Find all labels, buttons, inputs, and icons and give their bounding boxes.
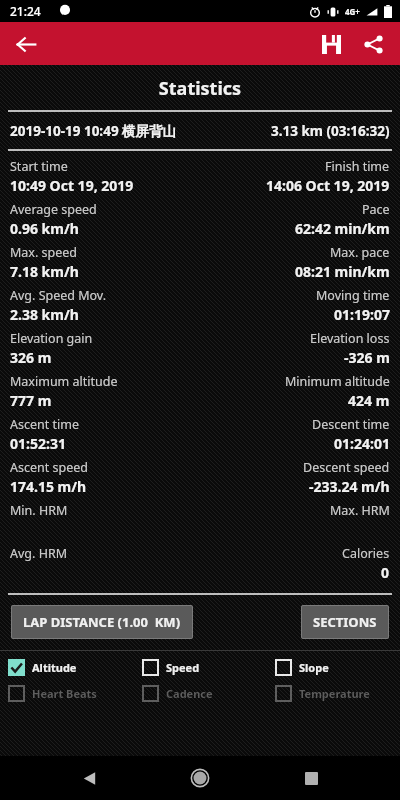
staticText: 777 m [10, 391, 52, 410]
staticText: 424 m [348, 391, 390, 410]
staticText: 2019-10-19 10:49 横屏背山 [10, 122, 177, 140]
staticText: Pace [362, 201, 390, 218]
button[interactable]: Share [352, 23, 394, 65]
button[interactable]: Slope [267, 659, 400, 676]
staticText: Elevation gain [10, 330, 93, 347]
staticText: Minimum altitude [285, 373, 390, 390]
staticText: Ascent time [10, 416, 79, 433]
staticText: 01:52:31 [10, 434, 66, 453]
staticText: Maximum altitude [10, 373, 118, 390]
staticText: Calories [342, 545, 390, 562]
staticText: 01:19:07 [334, 305, 390, 324]
staticText: Ascent speed [10, 459, 88, 476]
staticText: 62:42 min/km [295, 219, 390, 238]
button[interactable]: Cadence [134, 685, 267, 702]
staticText: 0 [381, 563, 390, 582]
staticText: Descent speed [303, 459, 390, 476]
staticText: 21:24 [10, 3, 41, 19]
staticText: Slope [299, 660, 329, 675]
staticText: Finish time [325, 158, 390, 175]
staticText: 01:24:01 [334, 434, 390, 453]
staticText: Cadence [166, 686, 213, 701]
button[interactable]: Back [6, 24, 46, 64]
staticText: -326 m [344, 348, 390, 367]
staticText: Max. HRM [330, 502, 390, 519]
staticText: Speed [166, 660, 200, 675]
button[interactable]: Heart Beats [0, 685, 134, 702]
button[interactable]: Home [183, 761, 217, 795]
staticText: 14:06 Oct 19, 2019 [266, 176, 390, 195]
staticText: 2.38 km/h [10, 305, 79, 324]
button[interactable]: LAP DISTANCE (1.00 KM) [11, 605, 193, 639]
staticText: Avg. Speed Mov. [10, 287, 107, 304]
staticText: 7.18 km/h [10, 262, 79, 281]
staticText: Min. HRM [10, 502, 68, 519]
staticText: Moving time [316, 287, 390, 304]
staticText: 174.15 m/h [10, 477, 87, 496]
button[interactable]: Speed [134, 659, 267, 676]
button[interactable]: Temperature [267, 685, 400, 702]
staticText: Max. pace [330, 244, 390, 261]
staticText: 326 m [10, 348, 52, 367]
button[interactable]: Save [310, 23, 352, 65]
staticText: Temperature [299, 686, 370, 701]
staticText: -233.24 m/h [309, 477, 390, 496]
staticText: 3.13 km (03:16:32) [271, 122, 390, 140]
staticText: Max. speed [10, 244, 78, 261]
button[interactable]: Back [72, 761, 106, 795]
staticText: 0.96 km/h [10, 219, 79, 238]
staticText: SECTIONS [313, 613, 377, 631]
staticText: Avg. HRM [10, 545, 68, 562]
staticText: 10:49 Oct 19, 2019 [10, 176, 134, 195]
staticText: Heart Beats [32, 686, 97, 701]
staticText: 4G+ [345, 6, 360, 17]
staticText: Average speed [10, 201, 97, 218]
staticText: LAP DISTANCE (1.00 KM) [23, 613, 181, 631]
button[interactable]: Altitude [0, 659, 134, 676]
staticText: Elevation loss [310, 330, 390, 347]
staticText: Start time [10, 158, 68, 175]
button[interactable]: SECTIONS [301, 605, 389, 639]
staticText: Statistics [0, 76, 400, 101]
staticText: Descent time [312, 416, 390, 433]
staticText: 08:21 min/km [295, 262, 390, 281]
button[interactable]: Recent apps [294, 761, 328, 795]
staticText: Altitude [32, 660, 77, 675]
